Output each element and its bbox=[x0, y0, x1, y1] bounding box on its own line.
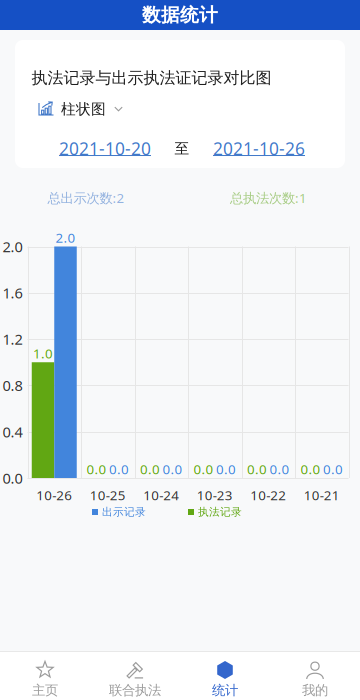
staticText: 2.0 bbox=[55, 229, 75, 246]
staticText: 2.0 bbox=[2, 237, 22, 256]
staticText: 0.0 bbox=[109, 460, 129, 478]
staticText: 0.0 bbox=[140, 460, 160, 478]
staticText: 0.0 bbox=[247, 460, 267, 478]
button[interactable]: 统计 bbox=[180, 652, 270, 700]
staticText: 出示记录 bbox=[102, 505, 146, 518]
staticText: 我的 bbox=[302, 682, 328, 698]
button[interactable]: 我的 bbox=[270, 652, 360, 700]
staticText: 执法记录与出示执法证记录对比图 bbox=[31, 68, 271, 88]
staticText: 10-22 bbox=[250, 486, 286, 504]
staticText: 0.4 bbox=[2, 422, 22, 441]
staticText: 1.2 bbox=[2, 329, 22, 349]
staticText: 10-25 bbox=[90, 486, 126, 504]
staticText: 统计 bbox=[212, 682, 238, 698]
staticText: 2021-10-20 bbox=[59, 137, 151, 160]
staticText: 10-26 bbox=[36, 486, 72, 504]
button[interactable]: 2021-10-20 bbox=[59, 137, 151, 160]
staticText: 0.0 bbox=[300, 460, 320, 478]
staticText: 0.0 bbox=[323, 460, 343, 478]
button[interactable]: 主页 bbox=[0, 652, 90, 700]
staticText: 0.0 bbox=[216, 460, 236, 478]
staticText: 10-23 bbox=[197, 486, 233, 504]
staticText: 至 bbox=[174, 139, 189, 157]
staticText: 联合执法 bbox=[109, 682, 161, 698]
staticText: 0.0 bbox=[269, 460, 289, 478]
staticText: 总执法次数:1 bbox=[230, 189, 307, 207]
staticText: 1.6 bbox=[2, 283, 22, 303]
staticText: 柱状图 bbox=[61, 100, 106, 118]
staticText: 总出示次数:2 bbox=[47, 189, 124, 207]
button[interactable]: 柱状图 bbox=[38, 100, 123, 118]
staticText: 1.0 bbox=[33, 344, 53, 362]
staticText: 数据统计 bbox=[142, 3, 218, 26]
button[interactable]: 联合执法 bbox=[90, 652, 180, 700]
staticText: 10-21 bbox=[304, 486, 340, 504]
staticText: 10-24 bbox=[143, 486, 179, 504]
staticText: 2021-10-26 bbox=[213, 137, 305, 160]
staticText: 执法记录 bbox=[198, 505, 242, 518]
staticText: 0.8 bbox=[2, 376, 22, 395]
staticText: 0.0 bbox=[2, 468, 22, 488]
staticText: 0.0 bbox=[162, 460, 182, 478]
button[interactable]: 2021-10-26 bbox=[213, 137, 305, 160]
staticText: 0.0 bbox=[86, 460, 106, 478]
staticText: 0.0 bbox=[193, 460, 213, 478]
staticText: 主页 bbox=[32, 682, 58, 698]
